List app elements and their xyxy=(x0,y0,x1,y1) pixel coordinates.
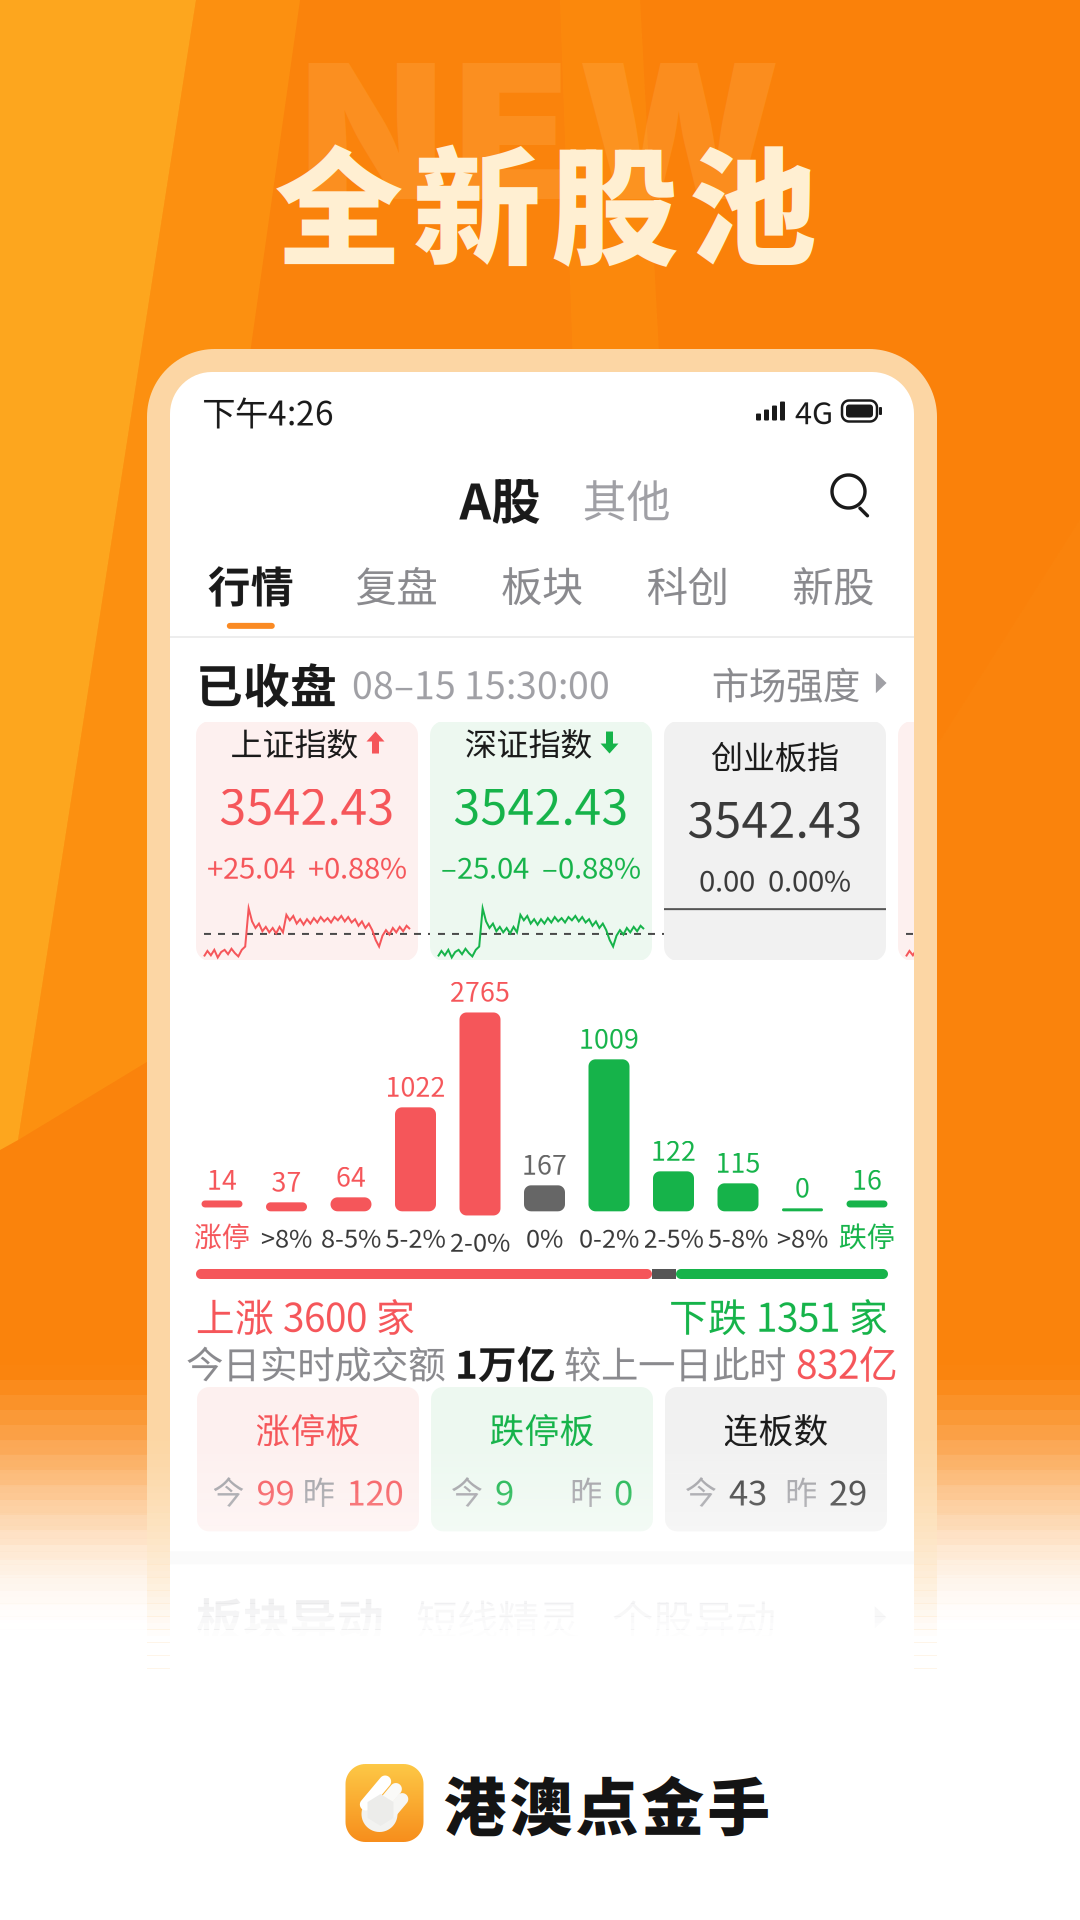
staticText: 跌停 xyxy=(839,1214,895,1255)
staticText: 8-5% xyxy=(321,1218,381,1255)
staticText: 连板数 xyxy=(723,1403,828,1453)
staticText: –25.04 xyxy=(441,845,529,887)
staticText: 行情 xyxy=(208,553,294,615)
staticText: 较上一日此时 xyxy=(564,1335,786,1389)
staticText: 0% xyxy=(526,1218,563,1255)
staticText: 9 xyxy=(495,1465,514,1515)
staticText: 2-0% xyxy=(450,1222,510,1259)
staticText: +0.88% xyxy=(308,845,407,887)
button[interactable]: 其他 xyxy=(576,466,676,530)
staticText: 43 xyxy=(729,1465,767,1515)
staticText: 全新股池 xyxy=(275,106,817,292)
button[interactable]: 连板数 xyxy=(665,1387,887,1531)
staticText: 3542.43 xyxy=(921,769,1080,839)
staticText: 832亿 xyxy=(796,1334,898,1390)
staticText: 3542.43 xyxy=(687,782,862,852)
staticText: 1009 xyxy=(579,1018,639,1056)
staticText: 板块异动 xyxy=(196,1584,384,1651)
staticText: 昨 xyxy=(570,1467,602,1513)
staticText: 2765 xyxy=(450,971,510,1009)
staticText: +11.1 xyxy=(925,845,997,887)
staticText: 下跌 1351 家 xyxy=(669,1287,888,1343)
staticText: A股 xyxy=(459,462,540,534)
staticText: 昨 xyxy=(785,1467,817,1513)
button[interactable]: 创业板指 xyxy=(664,721,886,961)
staticText: 今 xyxy=(212,1467,244,1513)
staticText: 0 xyxy=(795,1167,810,1205)
staticText: 复盘 xyxy=(355,554,437,614)
staticText: 0 xyxy=(614,1465,633,1515)
button[interactable]: 中小板指 xyxy=(898,721,1080,961)
staticText: 120 xyxy=(346,1465,403,1515)
staticText: +25.04 xyxy=(207,845,295,887)
staticText: >8% xyxy=(777,1218,828,1255)
staticText: 37 xyxy=(271,1161,301,1199)
button[interactable]: 板块 xyxy=(469,554,615,628)
button[interactable]: 复盘 xyxy=(324,554,469,628)
staticText: 港澳点金手 xyxy=(443,1758,770,1848)
staticText: 涨停板 xyxy=(255,1403,360,1453)
staticText: 0.00% xyxy=(768,858,851,900)
staticText: 板块 xyxy=(501,554,583,614)
staticText: 2-5% xyxy=(643,1218,703,1255)
staticText: 167 xyxy=(522,1144,567,1182)
staticText: 已收盘 xyxy=(196,649,337,717)
staticText: 其他 xyxy=(582,466,670,530)
staticText: –0.88% xyxy=(542,845,641,887)
staticText: 0-2% xyxy=(579,1218,639,1255)
staticText: 3542.43 xyxy=(219,769,394,839)
staticText: >8% xyxy=(261,1218,312,1255)
staticText: 4G xyxy=(795,389,833,433)
staticText: 下午4:26 xyxy=(202,387,334,435)
button[interactable]: 新股 xyxy=(760,554,906,628)
button[interactable]: 上证指数 xyxy=(196,721,418,961)
staticText: 115 xyxy=(715,1142,760,1180)
button[interactable]: 跌停板 xyxy=(431,1387,653,1531)
staticText: 跌停板 xyxy=(489,1403,594,1453)
staticText: 5-2% xyxy=(385,1218,445,1255)
button[interactable]: Search xyxy=(832,475,878,521)
staticText: 创业板指 xyxy=(711,732,839,778)
button[interactable]: 行情 xyxy=(178,553,324,629)
staticText: 市场强度 xyxy=(712,656,860,710)
staticText: 今 xyxy=(685,1467,717,1513)
button[interactable]: A股 xyxy=(453,462,546,534)
staticText: 08–15 15:30:00 xyxy=(352,656,610,710)
staticText: 5-8% xyxy=(708,1218,768,1255)
staticText: 科创 xyxy=(647,554,729,614)
staticText: 今日实时成交额 xyxy=(186,1335,445,1389)
button[interactable]: 深证指数 xyxy=(430,721,652,961)
button[interactable]: 市场强度 xyxy=(712,656,888,710)
staticText: 1022 xyxy=(385,1066,445,1104)
staticText: 上涨 3600 家 xyxy=(196,1287,415,1343)
staticText: 29 xyxy=(829,1465,867,1515)
staticText: 64 xyxy=(336,1156,366,1194)
staticText: 深证指数 xyxy=(464,719,592,765)
staticText: 昨 xyxy=(302,1467,334,1513)
staticText: 16 xyxy=(852,1159,882,1197)
staticText: 1万亿 xyxy=(455,1334,556,1390)
staticText: 涨停 xyxy=(194,1214,250,1255)
staticText: 0.00 xyxy=(699,858,755,900)
staticText: NEW xyxy=(300,18,780,244)
staticText: 3542.43 xyxy=(453,769,628,839)
staticText: 今 xyxy=(451,1467,483,1513)
staticText: 上证指数 xyxy=(230,719,358,765)
button[interactable]: 涨停板 xyxy=(197,1387,419,1531)
staticText: 中小板指 xyxy=(932,719,1060,765)
button[interactable]: 科创 xyxy=(615,554,760,628)
staticText: 14 xyxy=(207,1159,237,1197)
staticText: 99 xyxy=(256,1465,294,1515)
staticText: 122 xyxy=(651,1130,696,1168)
staticText: 新股 xyxy=(792,554,874,614)
